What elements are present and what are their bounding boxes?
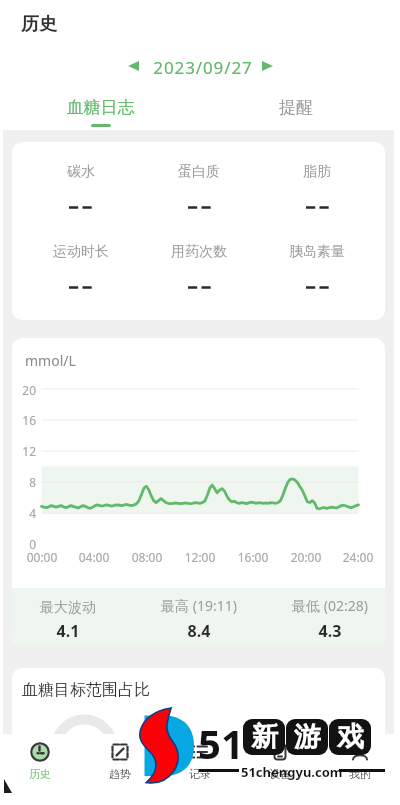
staticText: 血糖日志 xyxy=(3,97,198,118)
button[interactable]: 提醒 xyxy=(198,88,394,130)
staticText: 08:00 xyxy=(122,549,172,565)
staticText: 51chengyu.com xyxy=(241,763,343,781)
button[interactable]: 设备 xyxy=(240,734,320,805)
staticText: 4 xyxy=(12,505,36,521)
button[interactable]: 历史 xyxy=(0,734,80,805)
staticText: 脂肪 xyxy=(303,163,331,181)
staticText: 最高 (19:11) xyxy=(124,596,274,615)
button[interactable]: 血糖日志 xyxy=(3,88,198,130)
button[interactable]: Next day xyxy=(252,51,282,81)
staticText: 碳水 xyxy=(67,163,95,181)
staticText: 提醒 xyxy=(198,97,394,118)
staticText: 设备 xyxy=(269,767,291,781)
staticText: 血糖目标范围占比 xyxy=(22,680,150,700)
staticText: 用药次数 xyxy=(171,243,227,261)
staticText: 16:00 xyxy=(228,549,278,565)
staticText: 2023/09/27 xyxy=(103,56,303,79)
staticText: 24:00 xyxy=(333,549,383,565)
staticText: 新 xyxy=(251,720,278,754)
staticText: 16 xyxy=(12,412,36,428)
staticText: 最低 (02:28) xyxy=(255,596,385,615)
staticText: 12:00 xyxy=(175,549,225,565)
button[interactable]: 趋势 xyxy=(80,734,160,805)
staticText: 我的 xyxy=(349,767,371,781)
staticText: 蛋白质 xyxy=(178,163,220,181)
staticText: 4.1 xyxy=(12,620,143,642)
staticText: 历史 xyxy=(29,767,51,781)
staticText: 0 xyxy=(12,536,36,552)
button[interactable]: 记录 xyxy=(160,734,240,805)
staticText: 趋势 xyxy=(109,767,131,781)
staticText: 戏 xyxy=(337,720,364,754)
staticText: 8.4 xyxy=(124,620,274,642)
button[interactable]: Previous day xyxy=(118,51,148,81)
button[interactable]: 我的 xyxy=(320,734,400,805)
staticText: 00:00 xyxy=(17,549,67,565)
staticText: mmol/L xyxy=(25,351,76,370)
staticText: 8 xyxy=(12,474,36,490)
staticText: 12 xyxy=(12,443,36,459)
staticText: 04:00 xyxy=(69,549,119,565)
staticText: 4.3 xyxy=(255,620,385,642)
staticText: 最大波动 xyxy=(12,599,143,617)
staticText: 51 xyxy=(198,716,244,770)
staticText: 游 xyxy=(294,720,321,754)
staticText: 历史 xyxy=(21,13,57,36)
staticText: 20 xyxy=(12,382,36,398)
staticText: 记录 xyxy=(189,767,211,781)
staticText: 胰岛素量 xyxy=(289,243,345,261)
staticText: 运动时长 xyxy=(53,243,109,261)
staticText: 20:00 xyxy=(281,549,331,565)
